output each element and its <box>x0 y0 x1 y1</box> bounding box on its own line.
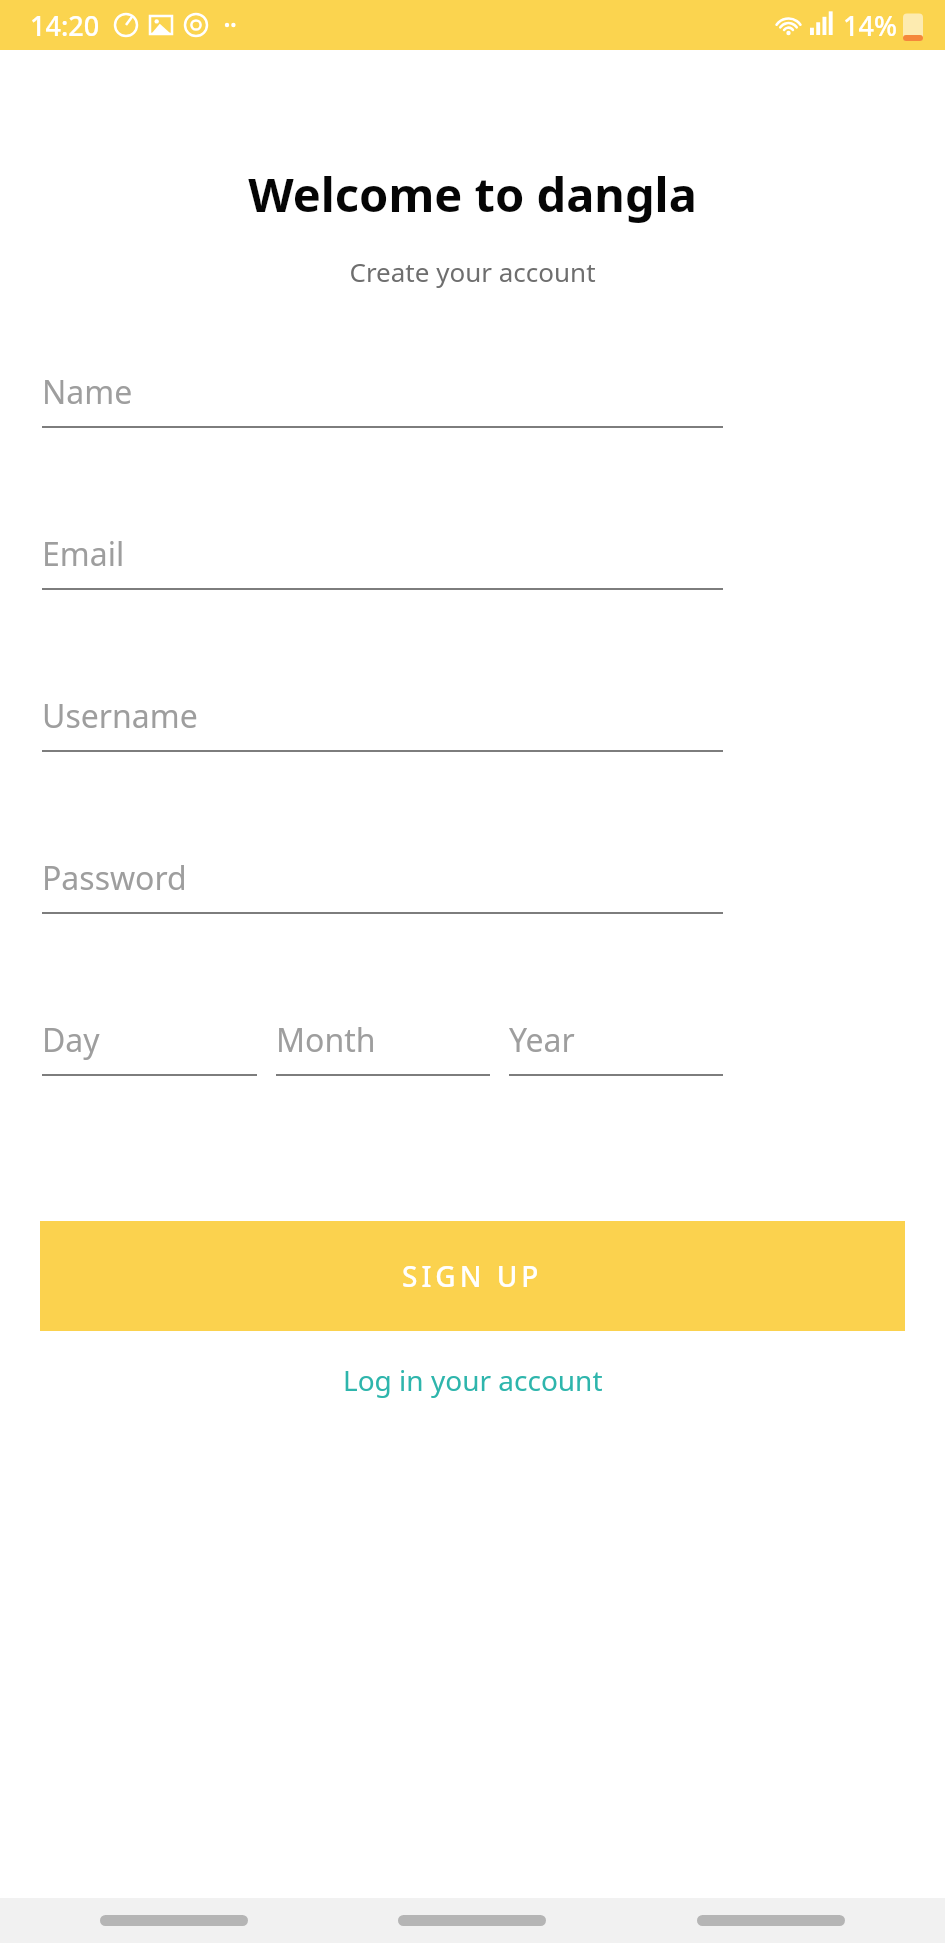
staticText: 14:20 <box>30 7 100 44</box>
staticText: Create your account <box>0 254 945 289</box>
staticText: Day <box>42 1018 100 1062</box>
button[interactable]: SIGN UP <box>40 1221 905 1331</box>
staticText: 14% <box>843 7 897 44</box>
staticText: Welcome to dangla <box>96 162 849 226</box>
staticText: Log in your account <box>343 1361 603 1399</box>
staticText: Name <box>42 370 133 414</box>
button[interactable]: Month <box>276 1018 490 1076</box>
button[interactable]: Name <box>42 370 723 428</box>
button[interactable]: Day <box>42 1018 257 1076</box>
button[interactable]: Year <box>509 1018 723 1076</box>
button[interactable]: Log in your account <box>0 1361 945 1399</box>
staticText: Password <box>42 856 187 900</box>
button[interactable]: Username <box>42 694 723 752</box>
button[interactable]: Back <box>697 1915 845 1926</box>
button[interactable]: Recent apps <box>100 1915 248 1926</box>
staticText: Year <box>509 1018 575 1062</box>
staticText: SIGN UP <box>402 1257 543 1295</box>
button[interactable]: Password <box>42 856 723 914</box>
staticText: Username <box>42 694 198 738</box>
button[interactable]: Email <box>42 532 723 590</box>
button[interactable]: Home <box>398 1915 546 1926</box>
staticText: Email <box>42 532 125 576</box>
staticText: Month <box>276 1018 376 1062</box>
